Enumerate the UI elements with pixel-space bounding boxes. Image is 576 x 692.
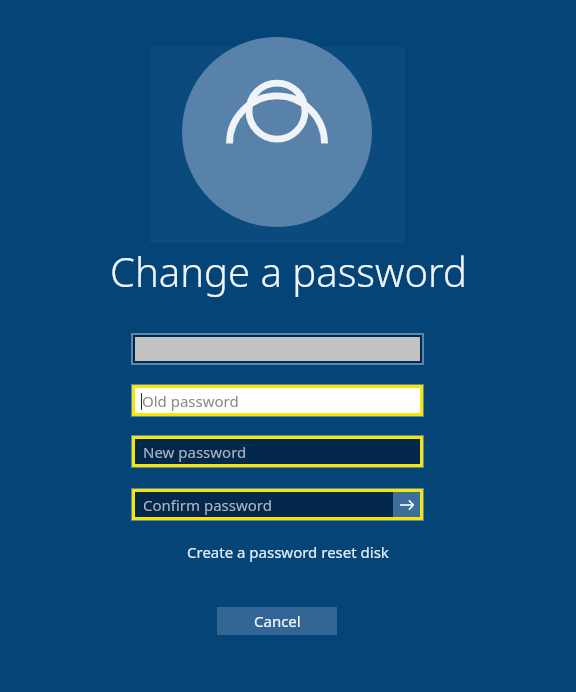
button[interactable]: Create a password reset disk xyxy=(181,540,395,564)
button[interactable]: Submit xyxy=(393,492,420,517)
button[interactable]: Old password xyxy=(135,388,420,413)
button[interactable]: Confirm password xyxy=(135,492,420,517)
staticText: Change a password xyxy=(110,244,467,298)
staticText: Cancel xyxy=(254,611,301,631)
button[interactable]: Cancel xyxy=(217,607,337,635)
staticText: Create a password reset disk xyxy=(187,542,389,562)
staticText: Confirm password xyxy=(143,495,272,515)
staticText: Old password xyxy=(142,391,239,411)
button[interactable]: New password xyxy=(135,439,420,464)
staticText: New password xyxy=(143,442,247,462)
